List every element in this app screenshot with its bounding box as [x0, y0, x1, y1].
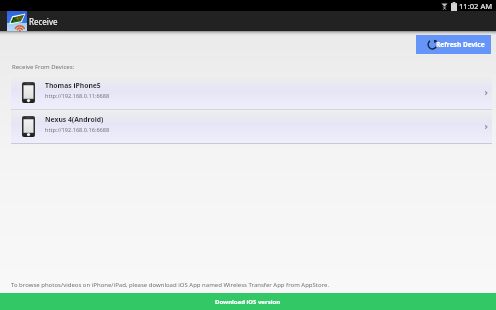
- staticText: Nexus 4(Android): [45, 115, 104, 124]
- button[interactable]: Download iOS version: [0, 293, 496, 310]
- other: Open device: [482, 89, 490, 97]
- staticText: Download iOS version: [215, 298, 281, 306]
- button[interactable]: Refresh Device: [416, 35, 491, 54]
- staticText: Receive: [29, 16, 58, 27]
- staticText: To browse photos/videos on iPhone/iPad, …: [11, 281, 329, 289]
- staticText: http://192.168.0.16:6688: [45, 126, 110, 134]
- staticText: 11:02 AM: [459, 1, 493, 11]
- staticText: http://192.168.0.11:6688: [45, 92, 110, 100]
- staticText: Thomas iPhone5: [45, 81, 101, 90]
- button[interactable]: Thomas iPhone5: [11, 76, 492, 109]
- staticText: Receive From Devices:: [12, 63, 75, 71]
- button[interactable]: Nexus 4(Android): [11, 110, 492, 143]
- other: Open device: [482, 123, 490, 131]
- staticText: Refresh Device: [436, 40, 485, 49]
